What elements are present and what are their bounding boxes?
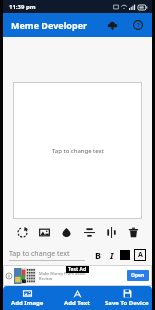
staticText: Test Ad xyxy=(68,266,87,273)
staticText: B xyxy=(95,249,101,261)
button[interactable]: Text color xyxy=(119,249,131,261)
staticText: ? xyxy=(137,21,140,29)
staticText: Tap to change text xyxy=(9,249,70,259)
button[interactable]: Align vertical xyxy=(80,223,98,241)
button[interactable]: Open xyxy=(131,272,145,279)
staticText: Add Image xyxy=(11,299,44,307)
staticText: Meme Developer xyxy=(11,19,88,31)
button[interactable]: Font xyxy=(134,249,146,261)
staticText: Open xyxy=(131,272,145,279)
staticText: Make Money From Music xyxy=(39,271,86,276)
staticText: Add Text xyxy=(64,299,90,307)
staticText: Save To Device xyxy=(105,299,149,307)
button[interactable]: Add Text xyxy=(52,286,102,310)
button[interactable]: Delete xyxy=(124,223,142,241)
button[interactable]: Italic xyxy=(105,248,119,262)
button[interactable]: Help xyxy=(130,17,146,33)
button[interactable]: Rotate xyxy=(13,223,31,241)
staticText: Review xyxy=(39,276,53,281)
staticText: Tap to change text xyxy=(52,147,104,155)
button[interactable]: Make Money From Music xyxy=(3,265,152,286)
button[interactable]: Tap to change text xyxy=(13,82,142,219)
staticText: A xyxy=(138,250,143,260)
button[interactable]: Fill color xyxy=(57,223,75,241)
staticText: 11:39 pm xyxy=(9,3,36,11)
button[interactable]: Save To Device xyxy=(102,286,152,310)
button[interactable]: Add Image xyxy=(3,286,52,310)
button[interactable]: Tap to change text xyxy=(9,249,91,261)
button[interactable]: Download xyxy=(104,17,120,33)
button[interactable]: Bold xyxy=(91,248,105,262)
button[interactable]: Image xyxy=(35,223,53,241)
button[interactable]: Align horizontal xyxy=(102,223,120,241)
staticText: I xyxy=(110,249,114,261)
